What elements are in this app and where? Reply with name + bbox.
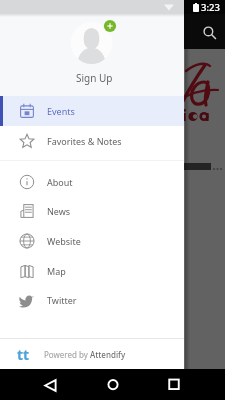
staticText: Events bbox=[47, 105, 75, 117]
button[interactable]: Back bbox=[40, 374, 62, 396]
button[interactable]: Sign Up bbox=[0, 0, 184, 96]
button[interactable]: tt bbox=[0, 339, 184, 369]
button[interactable]: Home bbox=[102, 374, 124, 396]
button[interactable]: About bbox=[0, 167, 184, 197]
staticText: 3:23 bbox=[201, 1, 220, 14]
staticText: News bbox=[47, 205, 71, 217]
staticText: tt bbox=[17, 345, 30, 364]
button[interactable]: Website bbox=[0, 226, 184, 256]
button[interactable]: Events bbox=[0, 96, 184, 126]
button[interactable]: Favorites & Notes bbox=[0, 126, 184, 156]
button[interactable]: Search bbox=[198, 21, 219, 42]
button[interactable]: Map bbox=[0, 256, 184, 286]
staticText: Twitter bbox=[47, 294, 77, 306]
staticText: Map bbox=[47, 265, 66, 277]
staticText: Favorites & Notes bbox=[47, 135, 122, 147]
button[interactable]: Recent apps bbox=[163, 374, 185, 396]
button[interactable]: News bbox=[0, 196, 184, 226]
staticText: Sign Up bbox=[76, 71, 113, 85]
staticText: Attendify bbox=[90, 349, 126, 360]
button[interactable]: Twitter bbox=[0, 285, 184, 315]
staticText: Website bbox=[47, 235, 81, 247]
staticText: Powered by bbox=[44, 349, 90, 360]
staticText: About bbox=[47, 176, 73, 188]
